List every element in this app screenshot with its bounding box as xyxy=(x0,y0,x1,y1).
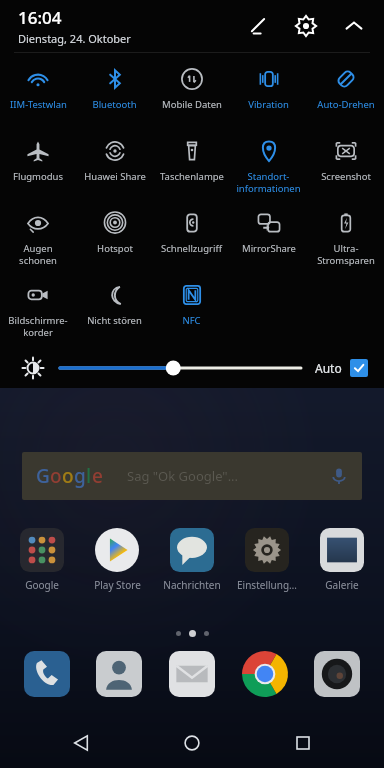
staticText: 16:04 xyxy=(18,6,62,29)
button[interactable]: Chrome xyxy=(239,648,291,700)
staticText: Einstellung… xyxy=(237,578,297,592)
staticText: IIM-Testwlan xyxy=(10,98,67,111)
button[interactable]: Camera xyxy=(311,648,363,700)
staticText: Mobile Daten xyxy=(162,98,222,111)
staticText: Sag "Ok Google"... xyxy=(127,467,239,485)
button[interactable]: Augen schonen xyxy=(0,203,76,275)
button[interactable]: MirrorShare xyxy=(230,203,307,275)
button[interactable]: NFC xyxy=(153,275,230,347)
staticText: Auto-Drehen xyxy=(317,98,375,111)
button[interactable]: Galerie xyxy=(309,528,375,592)
staticText: Schnellzugriff xyxy=(161,242,222,255)
staticText: Google xyxy=(25,578,59,592)
button[interactable]: Flugmodus xyxy=(0,131,76,203)
staticText: Screenshot xyxy=(321,170,371,183)
button[interactable]: Nachrichten xyxy=(159,528,225,592)
button[interactable]: Brightness xyxy=(20,355,46,381)
button[interactable]: IIM-Testwlan xyxy=(0,59,76,131)
button[interactable]: Google xyxy=(9,528,75,592)
button[interactable]: Vibration xyxy=(230,59,307,131)
staticText: Huawei Share xyxy=(84,170,146,183)
button[interactable]: Schnellzugriff xyxy=(153,203,230,275)
button[interactable]: Play Store xyxy=(84,528,150,592)
staticText: G xyxy=(36,463,50,489)
button[interactable]: Screenshot xyxy=(307,131,384,203)
staticText: Bluetooth xyxy=(92,98,137,111)
staticText: Ultra- Stromsparen xyxy=(317,242,375,267)
staticText: Galerie xyxy=(325,578,359,592)
button[interactable]: Hotspot xyxy=(76,203,153,275)
staticText: g xyxy=(74,463,86,489)
button[interactable]: Auto xyxy=(315,359,368,377)
staticText: o xyxy=(62,463,74,489)
staticText: MirrorShare xyxy=(242,242,296,255)
button[interactable]: Settings xyxy=(290,10,322,42)
button[interactable]: Bluetooth xyxy=(76,59,153,131)
button[interactable]: Back xyxy=(51,718,111,768)
button[interactable]: Edit xyxy=(242,10,274,42)
button[interactable]: Collapse xyxy=(338,10,370,42)
button[interactable]: Recents xyxy=(273,718,333,768)
button[interactable]: Taschenlampe xyxy=(153,131,230,203)
button[interactable]: G xyxy=(22,452,362,500)
staticText: l xyxy=(86,463,92,489)
staticText: Standort- informationen xyxy=(236,170,301,195)
staticText: Dienstag, 24. Oktober xyxy=(18,31,131,46)
button[interactable]: Standort- informationen xyxy=(230,131,307,203)
staticText: Nachrichten xyxy=(163,578,221,592)
staticText: NFC xyxy=(182,314,201,327)
button[interactable]: Phone xyxy=(21,648,73,700)
staticText: Augen schonen xyxy=(19,242,57,267)
button[interactable]: Contacts xyxy=(93,648,145,700)
staticText: e xyxy=(92,463,103,489)
button[interactable]: Huawei Share xyxy=(76,131,153,203)
staticText: Nicht stören xyxy=(87,314,142,327)
staticText: o xyxy=(50,463,62,489)
staticText: Play Store xyxy=(94,578,141,592)
button[interactable]: Ultra- Stromsparen xyxy=(307,203,384,275)
staticText: Taschenlampe xyxy=(160,170,224,183)
button[interactable] xyxy=(60,357,301,379)
button[interactable]: Nicht stören xyxy=(76,275,153,347)
button[interactable]: Auto-Drehen xyxy=(307,59,384,131)
button[interactable]: Einstellung… xyxy=(234,528,300,592)
staticText: Vibration xyxy=(248,98,289,111)
staticText: Hotspot xyxy=(97,242,133,255)
staticText: Bildschirmre- korder xyxy=(8,314,68,339)
button[interactable]: Mobile Daten xyxy=(153,59,230,131)
button[interactable]: Bildschirmre- korder xyxy=(0,275,76,347)
staticText: Flugmodus xyxy=(13,170,63,183)
button[interactable]: Home xyxy=(162,718,222,768)
staticText: Auto xyxy=(315,360,342,376)
button[interactable]: Email xyxy=(166,648,218,700)
